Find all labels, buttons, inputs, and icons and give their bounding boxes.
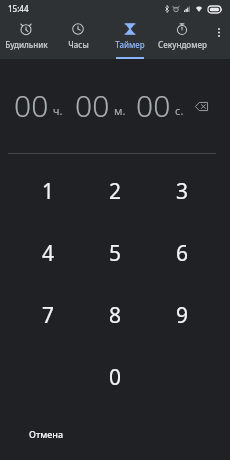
button[interactable]: Секундомер bbox=[156, 0, 208, 59]
staticText: 4 bbox=[42, 239, 55, 268]
staticText: 1 bbox=[42, 177, 55, 206]
staticText: 6 bbox=[176, 239, 189, 268]
staticText: 2 bbox=[109, 177, 122, 206]
staticText: Таймер bbox=[115, 39, 145, 50]
button[interactable]: 4 bbox=[14, 222, 82, 284]
staticText: Отмена bbox=[29, 428, 64, 440]
button[interactable]: 2 bbox=[82, 160, 149, 222]
button[interactable]: Отмена bbox=[25, 424, 68, 444]
staticText: 00 bbox=[136, 85, 171, 126]
button[interactable]: Таймер bbox=[104, 0, 156, 59]
button[interactable]: 5 bbox=[82, 222, 149, 284]
staticText: ч. bbox=[53, 103, 63, 118]
staticText: 0 bbox=[109, 363, 122, 392]
button[interactable]: 6 bbox=[149, 222, 216, 284]
staticText: Секундомер bbox=[158, 39, 207, 50]
button[interactable]: Будильник bbox=[0, 0, 52, 59]
staticText: 5 bbox=[109, 239, 122, 268]
button[interactable]: 7 bbox=[14, 284, 82, 346]
button[interactable]: 9 bbox=[149, 284, 216, 346]
staticText: 00 bbox=[14, 85, 49, 126]
staticText: Часы bbox=[68, 39, 89, 50]
button[interactable]: Часы bbox=[52, 0, 104, 59]
button[interactable]: 1 bbox=[14, 160, 82, 222]
staticText: 7 bbox=[42, 301, 55, 330]
button[interactable]: 8 bbox=[82, 284, 149, 346]
staticText: Будильник bbox=[5, 39, 48, 50]
staticText: 15:44 bbox=[8, 3, 29, 14]
staticText: 8 bbox=[109, 301, 122, 330]
staticText: м. bbox=[114, 103, 126, 118]
staticText: 3 bbox=[176, 177, 189, 206]
staticText: с. bbox=[175, 103, 184, 118]
button[interactable]: 0 bbox=[82, 346, 149, 408]
button[interactable]: More options bbox=[208, 0, 230, 59]
staticText: 00 bbox=[75, 85, 110, 126]
button[interactable]: Backspace bbox=[193, 99, 209, 113]
button[interactable]: 3 bbox=[149, 160, 216, 222]
staticText: 9 bbox=[176, 301, 189, 330]
